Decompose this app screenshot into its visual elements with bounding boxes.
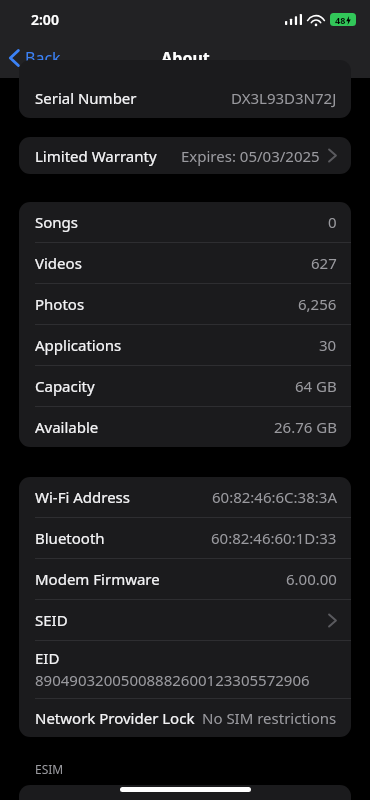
button[interactable]: Wi-Fi Address	[19, 477, 351, 517]
staticText: Applications	[35, 335, 122, 355]
staticText: Expires: 05/03/2025	[181, 146, 320, 166]
staticText: 2:00	[31, 10, 59, 29]
staticText: No SIM restrictions	[202, 708, 337, 728]
staticText: 0	[328, 212, 337, 232]
button[interactable]: EID	[19, 641, 351, 698]
staticText: 64 GB	[295, 376, 337, 396]
staticText: Back	[25, 47, 61, 69]
staticText: Photos	[35, 294, 85, 314]
button[interactable]: Capacity	[19, 366, 351, 406]
staticText: Videos	[35, 253, 82, 273]
staticText: Modem Firmware	[35, 569, 160, 589]
staticText: 627	[311, 253, 337, 273]
staticText: EID	[35, 648, 60, 668]
staticText: Songs	[35, 212, 78, 232]
staticText: 89049032005008882600123305572906	[35, 670, 310, 690]
button[interactable]: Photos	[19, 284, 351, 324]
staticText: Capacity	[35, 376, 95, 396]
staticText: 26.76 GB	[274, 417, 337, 437]
staticText: Bluetooth	[35, 528, 105, 548]
button[interactable]: Back	[0, 43, 71, 73]
staticText: DX3L93D3N72J	[231, 88, 337, 108]
staticText: Serial Number	[35, 88, 137, 108]
staticText: SEID	[35, 610, 68, 630]
button[interactable]: Modem Firmware	[19, 559, 351, 599]
staticText: 60:82:46:60:1D:33	[211, 528, 337, 548]
staticText: About	[161, 47, 210, 69]
button[interactable]: Available	[19, 407, 351, 447]
staticText: 30	[319, 335, 337, 355]
button[interactable]: Applications	[19, 325, 351, 365]
button[interactable]: Serial Number	[19, 78, 351, 118]
staticText: 48	[335, 14, 346, 26]
staticText: Network Provider Lock	[35, 708, 195, 728]
button[interactable]: Songs	[19, 202, 351, 242]
staticText: 6.00.00	[286, 569, 337, 589]
staticText: Available	[35, 417, 99, 437]
button[interactable]: SEID	[19, 600, 351, 640]
button[interactable]: Limited Warranty	[19, 137, 351, 174]
button[interactable]: Bluetooth	[19, 518, 351, 558]
staticText: 60:82:46:6C:38:3A	[212, 487, 337, 507]
button[interactable]: Network Provider Lock	[19, 699, 351, 737]
staticText: ESIM	[35, 761, 64, 777]
button[interactable]: Videos	[19, 243, 351, 283]
staticText: Wi-Fi Address	[35, 487, 130, 507]
staticText: Limited Warranty	[35, 146, 157, 166]
staticText: 6,256	[298, 294, 337, 314]
